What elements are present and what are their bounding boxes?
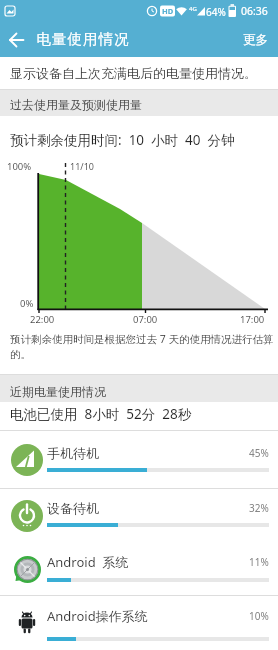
button[interactable]: Android 系统 [0, 542, 278, 595]
staticText: 预计剩余使用时间是根据您过去 7 天的使用情况进行估算 的。 [10, 332, 274, 361]
staticText: 22:00 [30, 313, 55, 326]
staticText: 手机待机 [47, 445, 99, 461]
staticText: 32% [249, 501, 269, 515]
staticText: 17:00 [240, 313, 265, 326]
staticText: 100% [7, 160, 32, 173]
staticText: 10% [249, 609, 269, 623]
staticText: HD [162, 6, 174, 16]
staticText: 电池已使用 8小时 52分 28秒 [10, 405, 192, 423]
button[interactable]: Android操作系统 [0, 596, 278, 650]
staticText: 11/10 [70, 160, 94, 172]
staticText: 4G [189, 5, 197, 13]
staticText: 64% [206, 5, 226, 19]
staticText: 45% [249, 446, 269, 460]
staticText: 0% [20, 297, 34, 310]
button[interactable]: 设备待机 [0, 489, 278, 542]
button[interactable] [0, 22, 34, 57]
button[interactable]: 手机待机 [0, 431, 278, 488]
staticText: 过去使用量及预测使用量 [10, 97, 142, 112]
staticText: 预计剩余使用时间: 10 小时 40 分钟 [10, 131, 235, 149]
staticText: 更多 [243, 32, 268, 48]
staticText: 近期电量使用情况 [10, 384, 106, 399]
staticText: Android操作系统 [47, 607, 148, 625]
staticText: 11% [249, 555, 269, 569]
staticText: 07:00 [133, 313, 158, 326]
staticText: 设备待机 [47, 500, 99, 516]
staticText: 电量使用情况 [36, 30, 129, 48]
staticText: 显示设备自上次充满电后的电量使用情况。 [10, 65, 257, 81]
staticText: Android 系统 [47, 553, 129, 571]
staticText: 06:36 [241, 4, 268, 18]
button[interactable]: 更多 [233, 22, 278, 57]
